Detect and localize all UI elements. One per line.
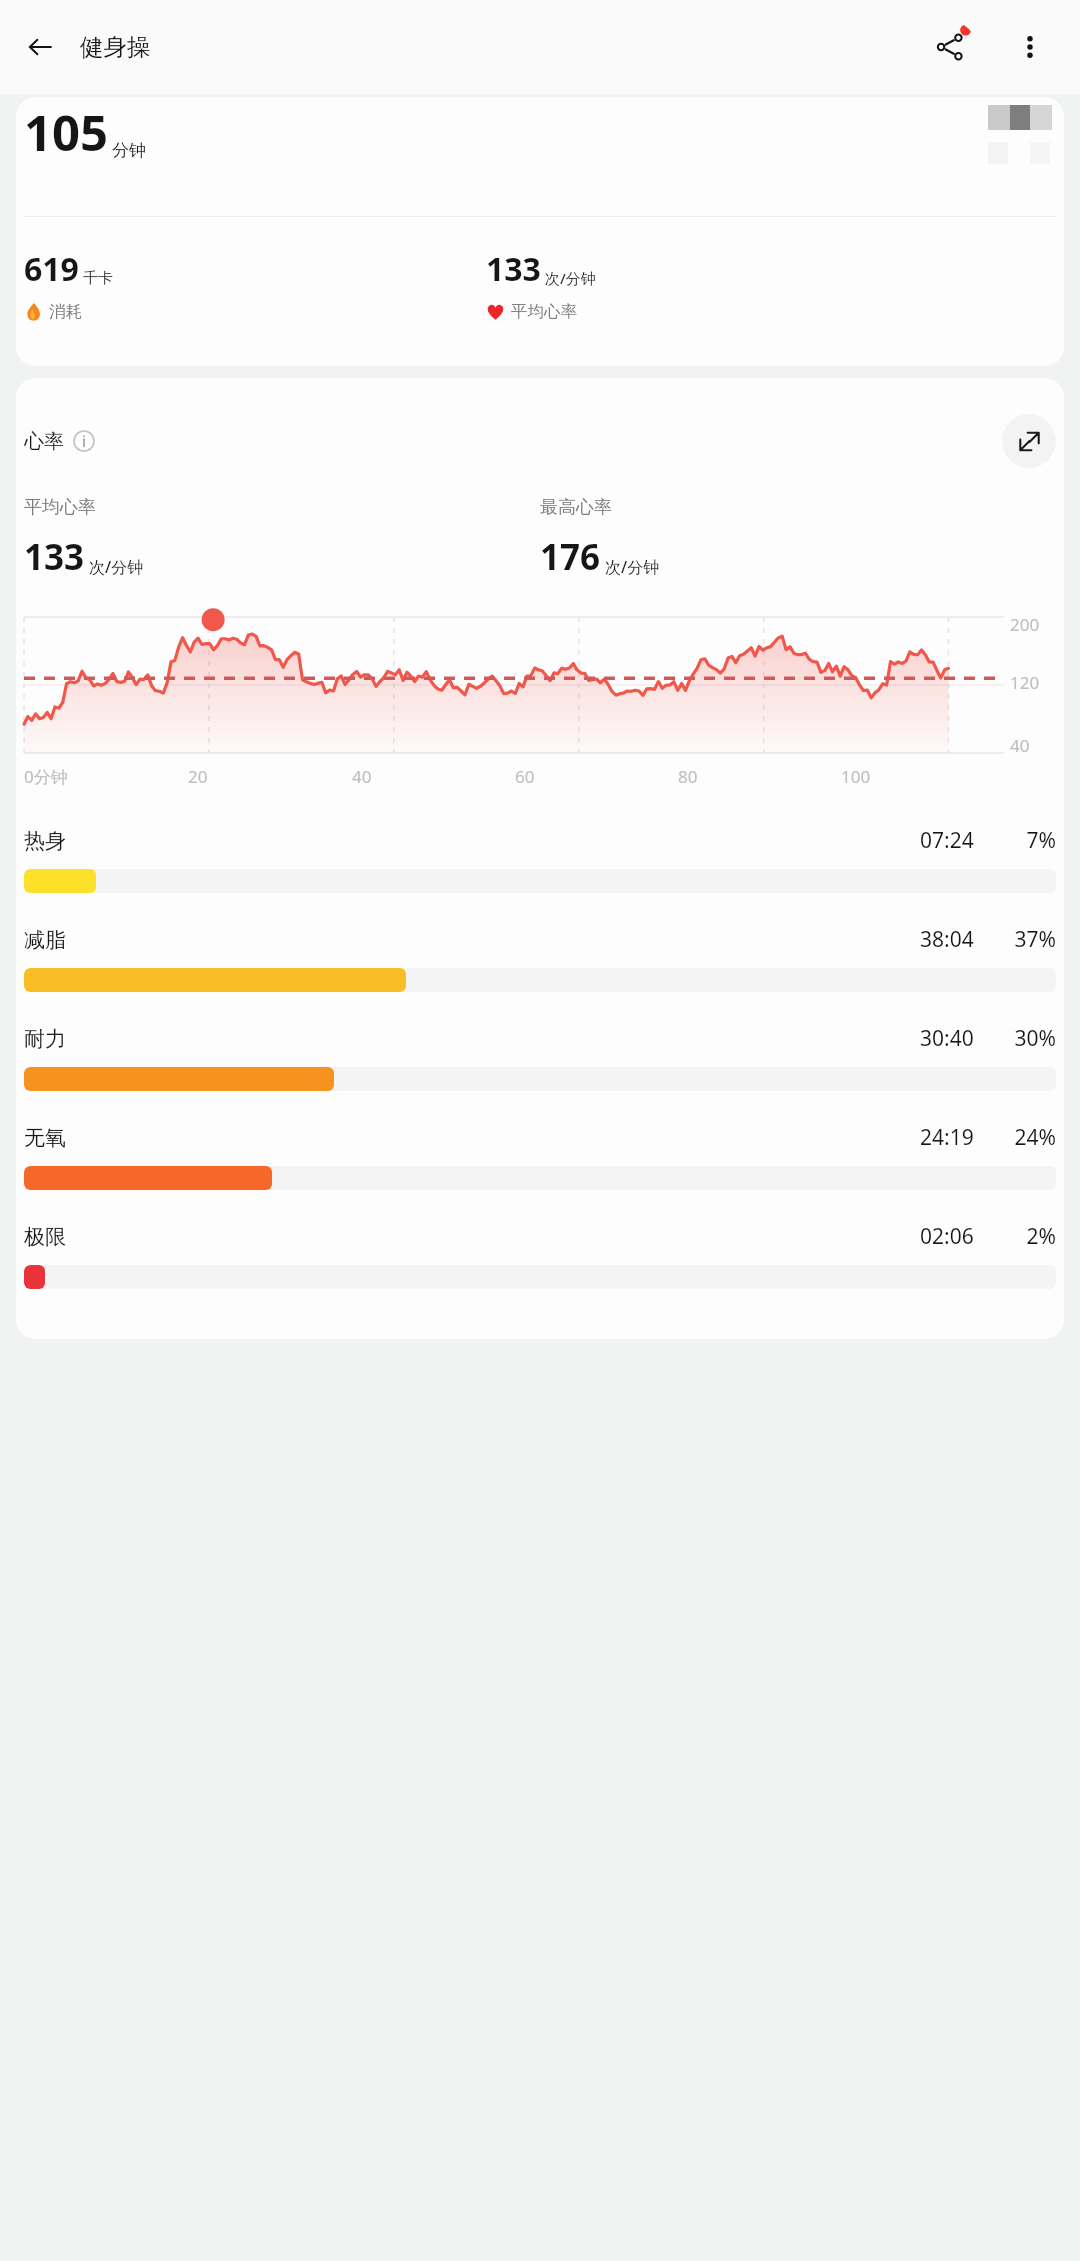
staticText: 80 <box>678 765 698 788</box>
staticText: 心率 <box>24 429 64 454</box>
staticText: 24:19 <box>920 1123 974 1152</box>
staticText: 最高心率 <box>540 496 612 519</box>
staticText: 次/分钟 <box>605 556 660 578</box>
button[interactable]: 极限 <box>24 1210 1056 1309</box>
staticText: 24% <box>994 1123 1056 1152</box>
staticText: 37% <box>994 925 1056 954</box>
staticText: 105 <box>24 99 109 166</box>
button[interactable]: Back <box>16 23 64 71</box>
staticText: 极限 <box>24 1224 66 1250</box>
staticText: 60 <box>515 765 535 788</box>
button[interactable]: Expand <box>1002 414 1056 468</box>
staticText: 40 <box>1010 734 1030 757</box>
staticText: 千卡 <box>83 269 113 288</box>
staticText: 平均心率 <box>24 496 96 519</box>
staticText: 无氧 <box>24 1125 66 1151</box>
staticText: 20 <box>188 765 208 788</box>
staticText: 133 <box>24 533 85 581</box>
button[interactable]: 耐力 <box>24 1012 1056 1111</box>
staticText: 7% <box>994 826 1056 855</box>
button[interactable]: 无氧 <box>24 1111 1056 1210</box>
staticText: 0分钟 <box>24 765 68 788</box>
staticText: 619 <box>24 247 79 291</box>
button[interactable]: 热身 <box>24 814 1056 913</box>
staticText: 200 <box>1010 613 1040 636</box>
staticText: 次/分钟 <box>89 556 144 578</box>
staticText: 热身 <box>24 828 66 854</box>
staticText: 30% <box>994 1024 1056 1053</box>
staticText: 133 <box>486 247 541 291</box>
button[interactable]: Share <box>924 21 976 73</box>
button[interactable]: Info <box>72 429 96 453</box>
staticText: 2% <box>994 1222 1056 1251</box>
staticText: 120 <box>1010 671 1040 694</box>
staticText: 02:06 <box>920 1222 974 1251</box>
staticText: 07:24 <box>920 826 974 855</box>
staticText: 消耗 <box>49 301 82 322</box>
staticText: 次/分钟 <box>545 268 596 288</box>
staticText: 平均心率 <box>511 301 577 322</box>
staticText: 38:04 <box>920 925 974 954</box>
button[interactable]: 减脂 <box>24 913 1056 1012</box>
staticText: 176 <box>540 533 601 581</box>
staticText: 100 <box>841 765 871 788</box>
staticText: 耐力 <box>24 1026 66 1052</box>
button[interactable]: More options <box>1004 21 1056 73</box>
staticText: 分钟 <box>112 140 146 161</box>
staticText: 30:40 <box>920 1024 974 1053</box>
staticText: 健身操 <box>80 32 151 62</box>
staticText: 减脂 <box>24 927 66 953</box>
staticText: 40 <box>352 765 372 788</box>
